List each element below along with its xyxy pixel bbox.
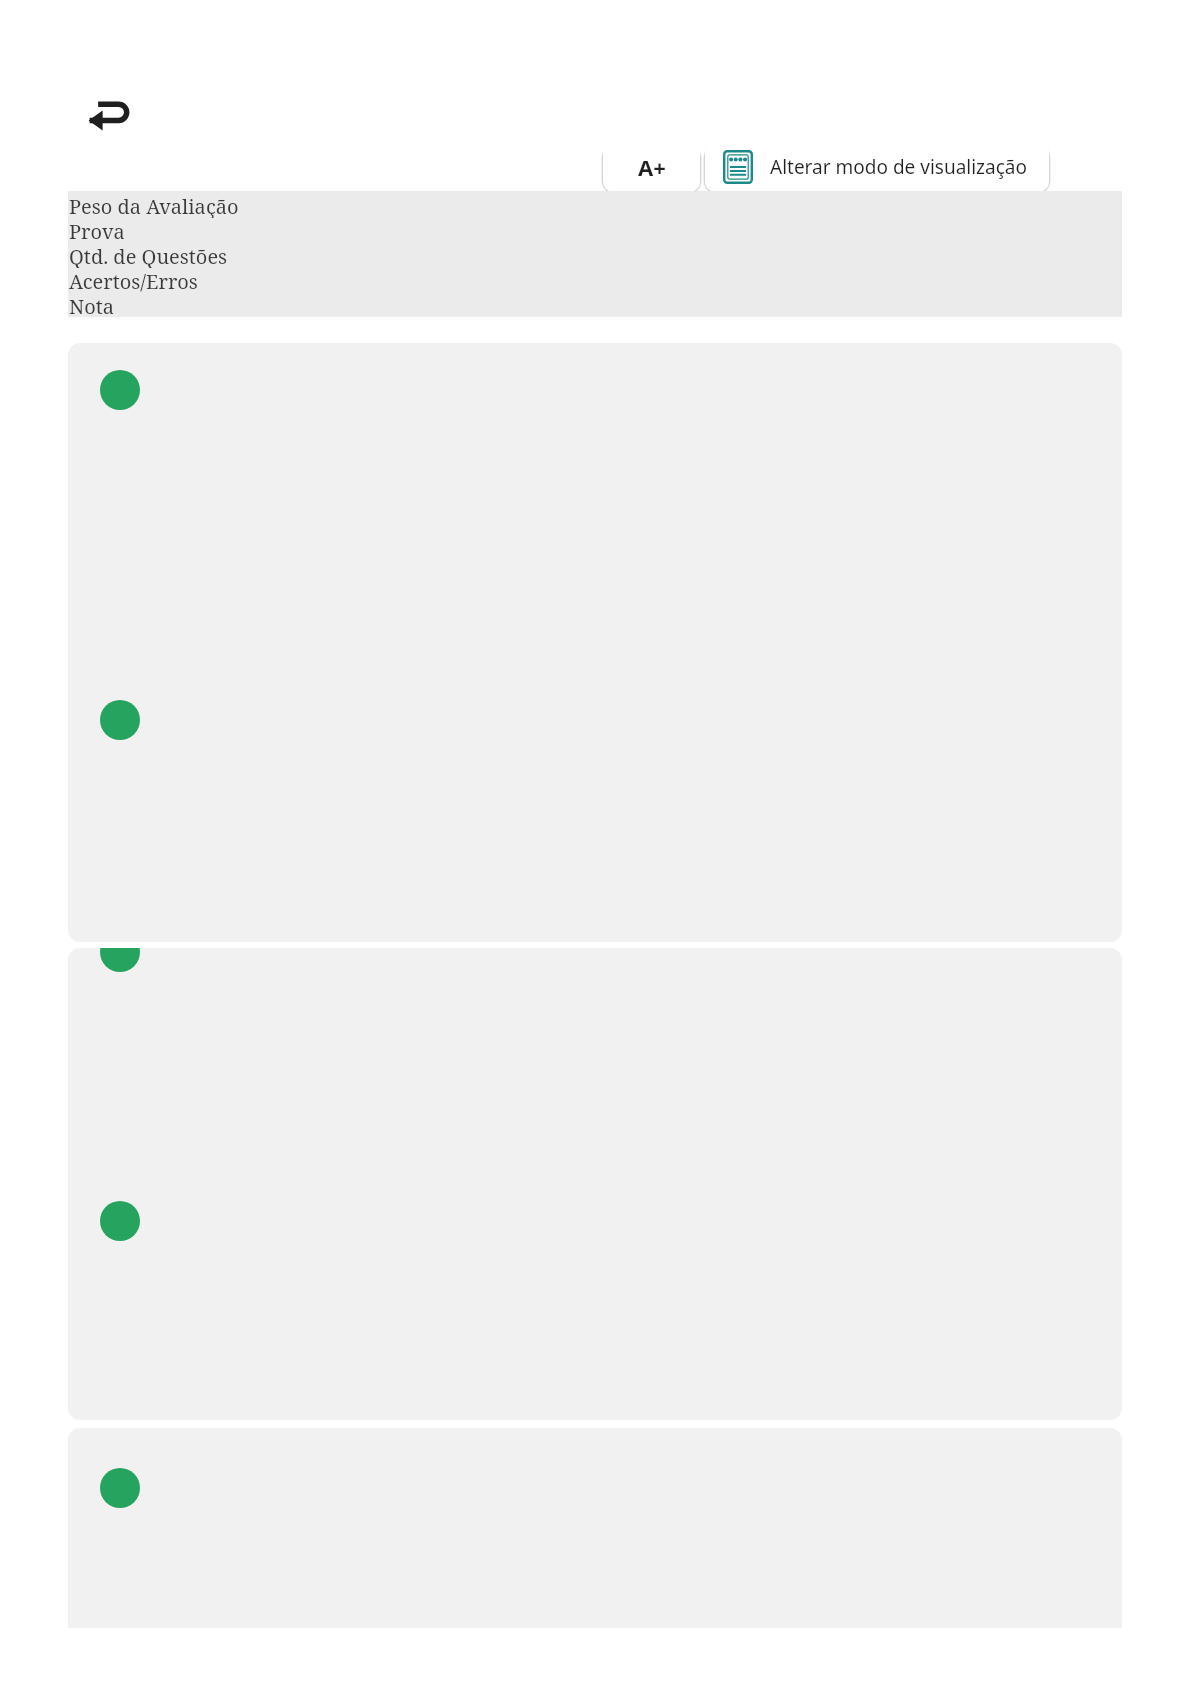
staticText: Qtd. de Questões: [69, 243, 228, 268]
staticText: Prova: [69, 218, 125, 243]
button[interactable]: [68, 1428, 1122, 1628]
staticText: A+: [638, 152, 666, 182]
button[interactable]: Alterar modo de visualização: [705, 142, 1049, 192]
button[interactable]: [68, 948, 1122, 1420]
staticText: Peso da Avaliação: [69, 193, 239, 218]
staticText: Alterar modo de visualização: [770, 154, 1027, 180]
button[interactable]: [68, 343, 1122, 942]
staticText: Acertos/Erros: [69, 268, 198, 293]
staticText: Nota: [69, 293, 115, 317]
button[interactable]: A+: [603, 142, 700, 192]
button[interactable]: Voltar: [78, 88, 136, 142]
